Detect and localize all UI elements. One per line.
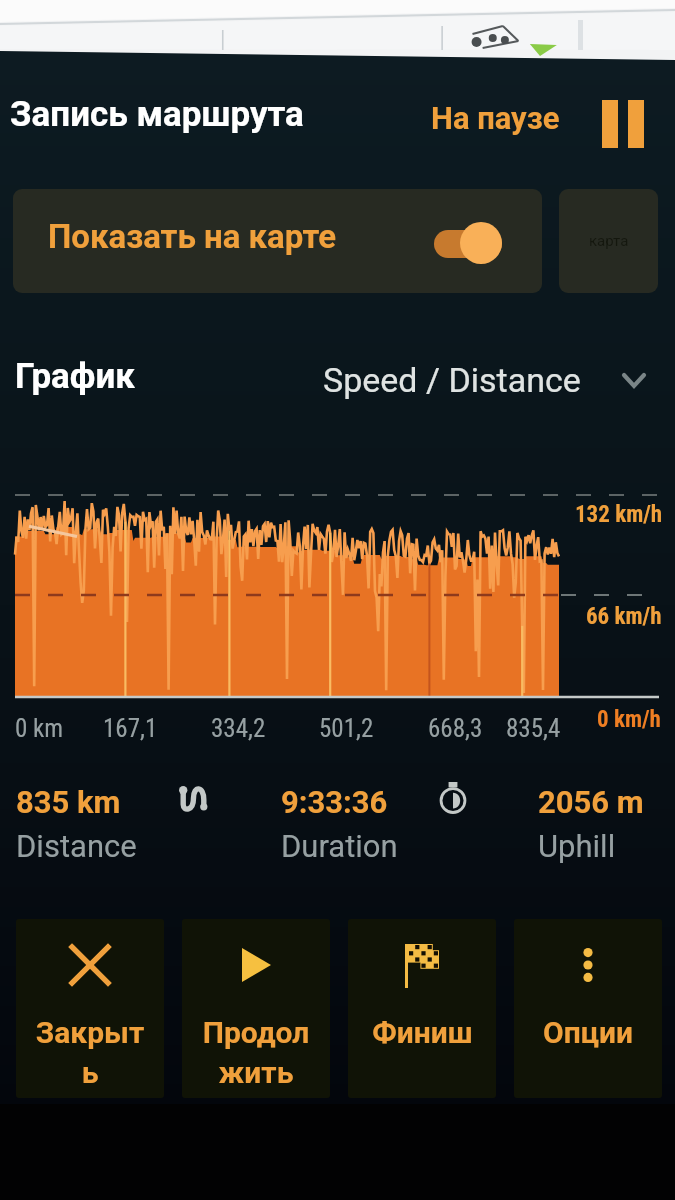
staticText: 9:33:36 (281, 784, 388, 820)
staticText: карта (589, 232, 629, 250)
button[interactable]: Финиш (348, 919, 496, 1098)
staticText: 132 km/h (575, 501, 663, 528)
staticText: Закрыть (30, 1015, 150, 1091)
button[interactable]: Продолжить (182, 919, 330, 1098)
staticText: 501,2 (319, 714, 374, 743)
button[interactable]: Показать на карте (13, 189, 542, 293)
staticText: 668,3 (428, 714, 483, 743)
staticText: Финиш (372, 1015, 473, 1050)
button[interactable]: Pause (594, 91, 652, 157)
staticText: Uphill (538, 828, 616, 864)
staticText: График (15, 356, 135, 397)
staticText: Speed / Distance (323, 360, 581, 400)
staticText: 66 km/h (586, 603, 662, 630)
staticText: Продолжить (196, 1015, 316, 1091)
button[interactable]: Опции (514, 919, 662, 1098)
staticText: 0 km/h (597, 706, 661, 733)
staticText: 334,2 (211, 714, 266, 743)
staticText: 835 km (16, 784, 121, 820)
button[interactable]: Speed / Distance (317, 354, 652, 406)
staticText: 0 km (15, 714, 64, 743)
staticText: 167,1 (103, 714, 158, 743)
staticText: Показать на карте (48, 217, 337, 256)
staticText: Duration (281, 828, 398, 864)
staticText: 2056 m (538, 784, 644, 820)
button[interactable]: Закрыть (16, 919, 164, 1098)
staticText: Запись маршрута (10, 94, 304, 135)
staticText: На паузе (431, 100, 560, 136)
staticText: Distance (16, 828, 137, 864)
staticText: Опции (543, 1015, 633, 1050)
staticText: 835,4 (506, 714, 561, 743)
